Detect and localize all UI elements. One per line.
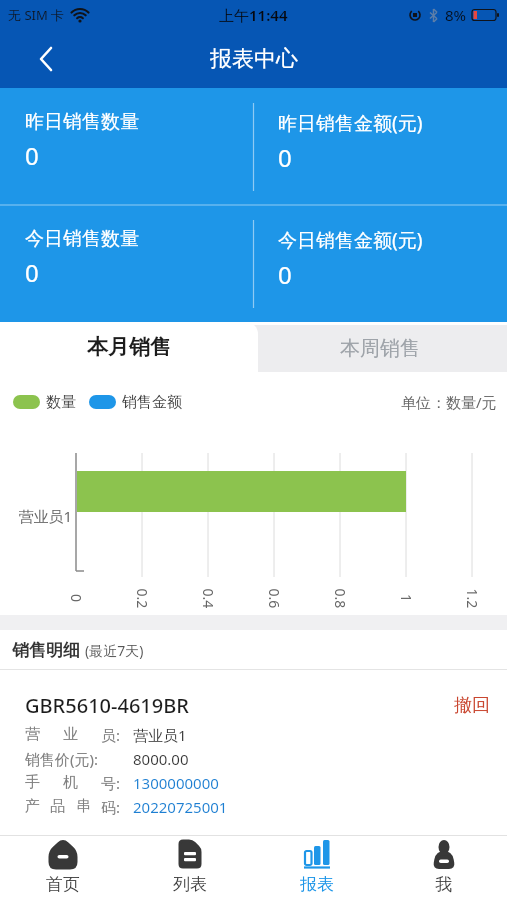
staticText: 我 (435, 874, 452, 895)
staticText: 数量 (46, 393, 76, 412)
staticText: 0 (67, 594, 86, 603)
staticText: GBR5610-4619BR (25, 692, 189, 719)
staticText: 手 (25, 773, 40, 792)
staticText: 上午11:44 (219, 5, 288, 25)
staticText: 0.6 (264, 588, 283, 608)
staticText: 营业员1 (133, 725, 187, 745)
staticText: 业 (63, 725, 78, 744)
button[interactable]: 首页 (0, 836, 126, 900)
button[interactable]: 本月销售 (0, 322, 258, 372)
staticText: 8000.00 (133, 749, 189, 769)
staticText: 营 (25, 725, 40, 744)
button[interactable]: 报表 (253, 836, 380, 900)
button[interactable]: 昨日销售金额(元) (253, 88, 507, 205)
staticText: 1300000000 (133, 773, 219, 793)
staticText: 品 (50, 797, 65, 816)
button[interactable]: 今日销售金额(元) (253, 205, 507, 322)
staticText: 报表中心 (210, 45, 298, 73)
staticText: 昨日销售数量 (25, 110, 139, 134)
button[interactable]: 撤回 (454, 694, 490, 717)
button[interactable]: 今日销售数量 (0, 205, 253, 322)
staticText: 销售明细 (12, 640, 80, 661)
staticText: 本月销售 (87, 334, 171, 360)
staticText: 8% (445, 5, 467, 25)
button[interactable]: 本周销售 (253, 325, 507, 372)
staticText: 码: (101, 797, 121, 817)
staticText: 列表 (173, 874, 207, 895)
button[interactable]: 我 (380, 836, 507, 900)
staticText: 0 (25, 256, 39, 289)
staticText: 销售价(元): (25, 749, 99, 769)
button[interactable]: 列表 (126, 836, 253, 900)
staticText: 单位：数量/元 (401, 392, 497, 412)
staticText: 销售金额 (122, 393, 182, 412)
staticText: 0 (25, 139, 39, 172)
staticText: 本周销售 (340, 336, 420, 361)
button[interactable]: GBR5610-4619BR (25, 670, 507, 827)
staticText: 今日销售数量 (25, 227, 139, 251)
staticText: (最近7天) (85, 641, 144, 660)
staticText: 产 (25, 797, 40, 816)
staticText: 报表 (300, 874, 334, 895)
staticText: 1 (397, 594, 416, 603)
staticText: 0 (278, 141, 292, 174)
staticText: 号: (101, 773, 121, 793)
staticText: 0.4 (198, 588, 217, 608)
staticText: 机 (63, 773, 78, 792)
button[interactable] (28, 41, 64, 77)
staticText: 0.2 (132, 588, 151, 608)
staticText: 0.8 (330, 588, 349, 608)
staticText: 串 (76, 797, 91, 816)
staticText: 营业员1 (18, 506, 72, 526)
staticText: 1.2 (462, 588, 481, 608)
staticText: 无 SIM 卡 (8, 6, 65, 24)
staticText: 20220725001 (133, 797, 228, 817)
staticText: 首页 (46, 874, 80, 895)
button[interactable]: 昨日销售数量 (0, 88, 253, 205)
staticText: 昨日销售金额(元) (278, 110, 423, 136)
staticText: 员: (101, 725, 121, 745)
staticText: 0 (278, 258, 292, 291)
staticText: 今日销售金额(元) (278, 227, 423, 253)
